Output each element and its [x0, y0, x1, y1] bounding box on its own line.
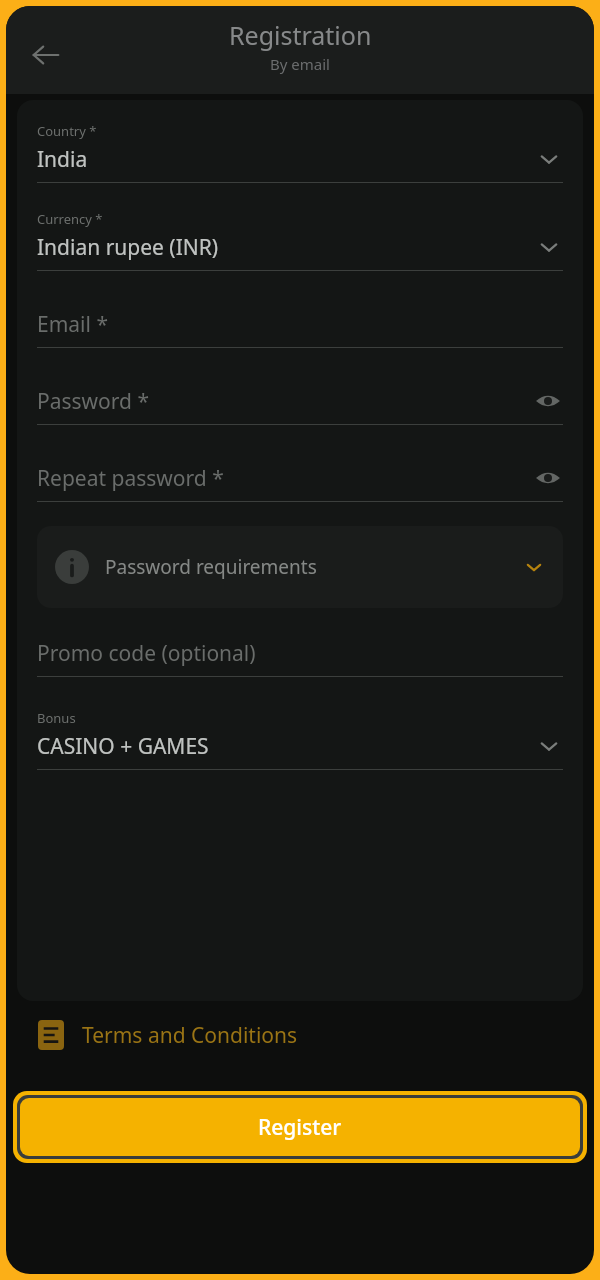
staticText: India [37, 145, 88, 174]
staticText: Indian rupee (INR) [37, 233, 219, 262]
button[interactable]: Register [13, 1091, 587, 1163]
button[interactable]: Show password [533, 463, 563, 493]
staticText: Email * [37, 310, 108, 339]
button[interactable]: Email * [37, 309, 563, 348]
staticText: By email [270, 54, 330, 74]
staticText: Bonus [37, 709, 76, 727]
button[interactable]: Country * [37, 122, 563, 183]
button[interactable]: Password requirements [37, 526, 563, 608]
button[interactable]: Repeat password * [37, 463, 563, 502]
button[interactable]: Password * [37, 386, 563, 425]
staticText: Register [258, 1113, 342, 1142]
button[interactable]: Show password [533, 386, 563, 416]
staticText: Promo code (optional) [37, 639, 256, 668]
staticText: Repeat password * [37, 464, 224, 493]
button[interactable]: Terms and Conditions [6, 1001, 594, 1069]
staticText: Password * [37, 387, 150, 416]
staticText: Password requirements [105, 554, 523, 580]
button[interactable]: Back [22, 31, 70, 79]
staticText: Currency * [37, 210, 103, 228]
button[interactable]: Promo code (optional) [37, 638, 563, 677]
button[interactable]: Currency * [37, 210, 563, 271]
button[interactable]: Bonus [37, 709, 563, 770]
staticText: Registration [229, 18, 372, 52]
staticText: Terms and Conditions [82, 1021, 298, 1050]
staticText: CASINO + GAMES [37, 732, 209, 761]
staticText: Country * [37, 122, 97, 140]
